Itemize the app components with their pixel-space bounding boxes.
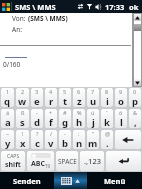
- staticText: .: [106, 137, 109, 149]
- staticText: ?: [36, 130, 39, 137]
- staticText: ´: [106, 109, 108, 116]
- staticText: e: [34, 95, 40, 107]
- staticText: s: [20, 116, 25, 128]
- staticText: ,: [134, 116, 137, 128]
- button[interactable]: 8: [101, 88, 113, 107]
- staticText: %: [77, 109, 82, 116]
- button[interactable]: ü: [87, 109, 99, 128]
- staticText: SPACE: [58, 157, 77, 166]
- staticText: ok: [129, 2, 139, 12]
- staticText: -: [64, 130, 66, 137]
- staticText: t: [63, 95, 68, 107]
- other: Backspace: [122, 136, 134, 144]
- staticText: w: [18, 95, 27, 107]
- staticText: ": [92, 130, 95, 137]
- button[interactable]: 4: [45, 88, 57, 107]
- button[interactable]: #: [59, 109, 71, 128]
- staticText: 0: [133, 88, 137, 95]
- button[interactable]: Menü: [87, 172, 142, 189]
- staticText: ä: [6, 109, 10, 116]
- staticText: CAPS: [7, 153, 20, 160]
- button[interactable]: ": [87, 130, 99, 149]
- button[interactable]: Enter: [106, 151, 141, 171]
- button[interactable]: !: [16, 130, 29, 149]
- button[interactable]: ~: [1, 130, 14, 149]
- staticText: #: [63, 109, 67, 116]
- staticText: m: [88, 137, 98, 149]
- button[interactable]: Senden: [0, 172, 54, 189]
- staticText: 1: [6, 88, 10, 95]
- button[interactable]: Show keyboard: [54, 172, 87, 189]
- button[interactable]: Scroll: [134, 14, 141, 86]
- staticText: +: [49, 109, 53, 116]
- button[interactable]: %: [73, 109, 85, 128]
- staticText: r: [49, 95, 54, 107]
- staticText: k: [104, 116, 110, 128]
- button[interactable]: ö: [115, 109, 127, 128]
- staticText: q: [4, 95, 11, 107]
- staticText: :: [78, 130, 80, 137]
- staticText: 5: [63, 88, 67, 95]
- button[interactable]: &: [129, 109, 141, 128]
- button[interactable]: An:: [0, 24, 131, 35]
- button[interactable]: Backspace: [115, 130, 141, 149]
- staticText: 8: [105, 88, 109, 95]
- staticText: i: [106, 95, 109, 107]
- staticText: 0/160: [3, 60, 21, 69]
- staticText: c: [35, 137, 40, 149]
- staticText: !: [22, 130, 24, 137]
- button[interactable]: 6: [73, 88, 85, 107]
- staticText: f: [49, 116, 53, 128]
- staticText: 4: [49, 88, 53, 95]
- button[interactable]: -: [31, 109, 43, 128]
- staticText: Menü: [104, 176, 126, 186]
- staticText: ~: [6, 130, 10, 137]
- button[interactable]: Von:: [0, 13, 131, 24]
- button[interactable]: :: [73, 130, 85, 149]
- staticText: z: [77, 95, 82, 107]
- staticText: Senden: [13, 176, 41, 186]
- staticText: 6: [77, 88, 81, 95]
- button[interactable]: SPACE: [56, 151, 78, 171]
- button[interactable]: /: [45, 130, 57, 149]
- staticText: g: [62, 116, 69, 128]
- button[interactable]: 3: [31, 88, 43, 107]
- button[interactable]: 0: [129, 88, 141, 107]
- staticText: /: [50, 130, 53, 137]
- staticText: b: [62, 137, 69, 149]
- button[interactable]: ok: [129, 2, 139, 12]
- button[interactable]: 5: [59, 88, 71, 107]
- button[interactable]: CAPS: [1, 151, 25, 171]
- staticText: shift: [5, 160, 21, 170]
- other: Enter: [118, 157, 129, 165]
- staticText: j: [92, 116, 95, 128]
- button[interactable]: 1: [1, 88, 14, 107]
- staticText: l: [120, 116, 123, 128]
- staticText: 7: [91, 88, 95, 95]
- staticText: (SMS \ MMS): [28, 14, 68, 23]
- button[interactable]: ABC: [27, 151, 54, 171]
- staticText: @: [105, 130, 110, 137]
- staticText: x: [20, 137, 26, 149]
- staticText: ABC: [31, 159, 45, 169]
- staticText: y: [5, 137, 11, 149]
- staticText: ö: [119, 109, 123, 116]
- button[interactable]: -: [59, 130, 71, 149]
- button[interactable]: ?: [31, 130, 43, 149]
- staticText: 9: [119, 88, 123, 95]
- button[interactable]: ß: [16, 109, 29, 128]
- button[interactable]: 9: [115, 88, 127, 107]
- button[interactable]: .,123: [80, 151, 104, 171]
- button[interactable]: +: [45, 109, 57, 128]
- button[interactable]: @: [101, 130, 113, 149]
- button[interactable]: 2: [16, 88, 29, 107]
- staticText: SMS \ MMS: [15, 2, 56, 12]
- button[interactable]: 7: [87, 88, 99, 107]
- button[interactable]: ´: [101, 109, 113, 128]
- button[interactable]: ä: [1, 109, 14, 128]
- staticText: T9: [45, 163, 51, 169]
- staticText: d: [34, 116, 41, 128]
- staticText: -: [36, 109, 38, 116]
- staticText: n: [76, 137, 83, 149]
- staticText: Von:: [12, 14, 28, 23]
